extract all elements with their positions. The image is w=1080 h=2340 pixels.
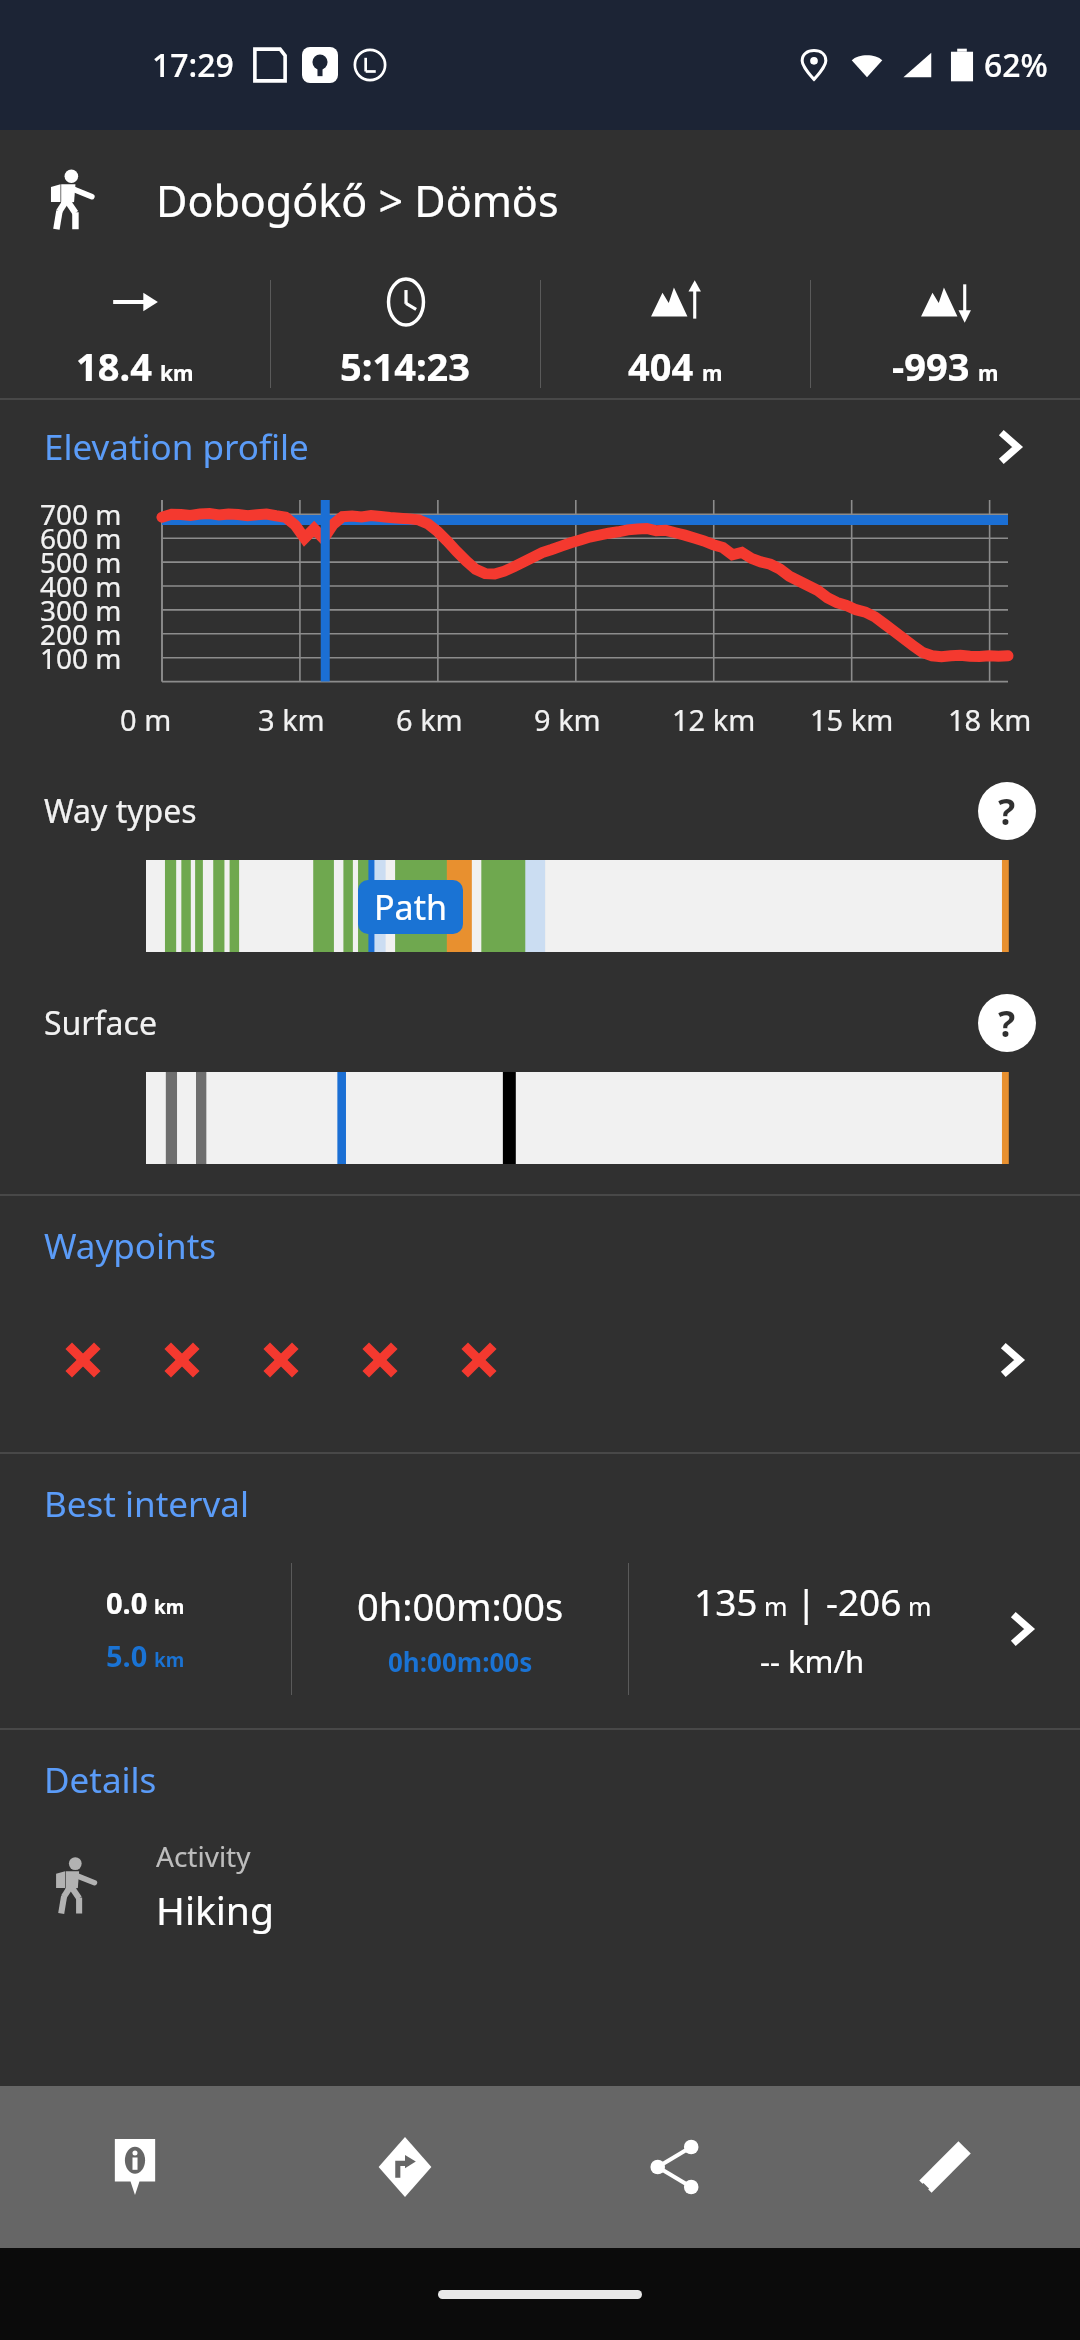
staticText: 0 m — [120, 700, 172, 739]
staticText: Dobogókő > Dömös — [156, 171, 559, 230]
button[interactable]: Waypoints — [0, 1196, 1080, 1452]
button[interactable]: Details — [0, 1730, 1080, 1830]
staticText: Waypoints — [44, 1222, 217, 1270]
button[interactable]: Share — [540, 2086, 810, 2248]
staticText: | -206 — [796, 1576, 902, 1626]
staticText: 17:29 — [152, 43, 234, 87]
staticText: 62% — [984, 43, 1048, 87]
button[interactable]: Edit — [810, 2086, 1080, 2248]
staticText: Activity — [156, 1837, 251, 1875]
staticText: 6 km — [396, 700, 463, 739]
staticText: 404 — [628, 340, 694, 392]
staticText: 5.0 — [106, 1636, 148, 1675]
staticText: 600 m — [40, 519, 122, 557]
staticText: Surface — [44, 1001, 157, 1045]
button[interactable]: Help — [978, 782, 1036, 840]
button[interactable]: Best interval — [0, 1454, 1080, 1728]
staticText: 400 m — [40, 567, 122, 605]
button[interactable]: Surface — [0, 974, 1080, 1194]
staticText: 0h:00m:00s — [357, 1580, 564, 1632]
staticText: 700 m — [40, 495, 122, 533]
button[interactable]: Dobogókő > Dömös — [0, 130, 1080, 270]
staticText: 200 m — [40, 615, 122, 653]
staticText: ? — [998, 787, 1016, 836]
staticText: m — [908, 1589, 932, 1623]
staticText: m — [764, 1589, 788, 1623]
staticText: 18 km — [948, 700, 1032, 739]
staticText: 18.4 — [76, 340, 152, 392]
staticText: 500 m — [40, 543, 122, 581]
staticText: 0h:00m:00s — [388, 1644, 533, 1679]
staticText: Path — [374, 884, 447, 930]
staticText: km — [154, 1647, 185, 1673]
staticText: 5:14:23 — [340, 340, 471, 392]
staticText: Way types — [44, 789, 197, 833]
staticText: Details — [44, 1756, 157, 1804]
staticText: 100 m — [40, 639, 122, 677]
staticText: m — [978, 359, 999, 388]
staticText: 300 m — [40, 591, 122, 629]
staticText: km — [160, 359, 194, 388]
staticText: Hiking — [156, 1883, 274, 1936]
staticText: -- km/h — [760, 1640, 865, 1682]
button[interactable]: Activity — [0, 1830, 1080, 1942]
staticText: 3 km — [258, 700, 325, 739]
staticText: 15 km — [810, 700, 894, 739]
button[interactable]: Info — [0, 2086, 270, 2248]
button[interactable]: Navigate — [270, 2086, 540, 2248]
button[interactable]: Help — [978, 994, 1036, 1052]
button[interactable]: Way types — [0, 762, 1080, 974]
staticText: Elevation profile — [44, 423, 309, 471]
staticText: -993 — [892, 340, 970, 392]
staticText: 12 km — [672, 700, 756, 739]
staticText: Best interval — [44, 1480, 249, 1528]
staticText: 135 — [694, 1576, 758, 1626]
staticText: 9 km — [534, 700, 601, 739]
staticText: m — [702, 359, 723, 388]
button[interactable]: Elevation profile — [0, 400, 1080, 762]
staticText: 0.0 — [106, 1583, 148, 1622]
staticText: ? — [998, 999, 1016, 1048]
staticText: km — [154, 1594, 185, 1620]
